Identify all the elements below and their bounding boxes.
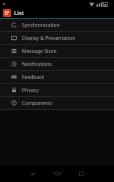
button[interactable]: Home xyxy=(45,165,69,182)
button[interactable]: Back xyxy=(21,165,45,182)
staticText: Feedback xyxy=(22,74,45,81)
staticText: Display & Presentation xyxy=(22,35,76,42)
staticText: Privacy xyxy=(22,87,39,94)
button[interactable]: App icon xyxy=(0,8,114,18)
button[interactable]: Display & Presentation xyxy=(0,32,114,44)
button[interactable]: Notifications xyxy=(0,58,114,70)
staticText: Message Store xyxy=(22,48,57,55)
staticText: Components xyxy=(22,100,53,107)
other: App icon xyxy=(3,9,11,17)
button[interactable]: Feedback xyxy=(0,71,114,83)
staticText: Notifications xyxy=(22,61,52,68)
staticText: List xyxy=(14,9,25,17)
button[interactable]: Message Store xyxy=(0,45,114,57)
button[interactable]: Recent apps xyxy=(69,165,93,182)
button[interactable]: Privacy xyxy=(0,84,114,96)
button[interactable]: Components xyxy=(0,97,114,109)
button[interactable]: Synchronisation xyxy=(0,19,114,31)
staticText: Synchronisation xyxy=(22,22,60,29)
